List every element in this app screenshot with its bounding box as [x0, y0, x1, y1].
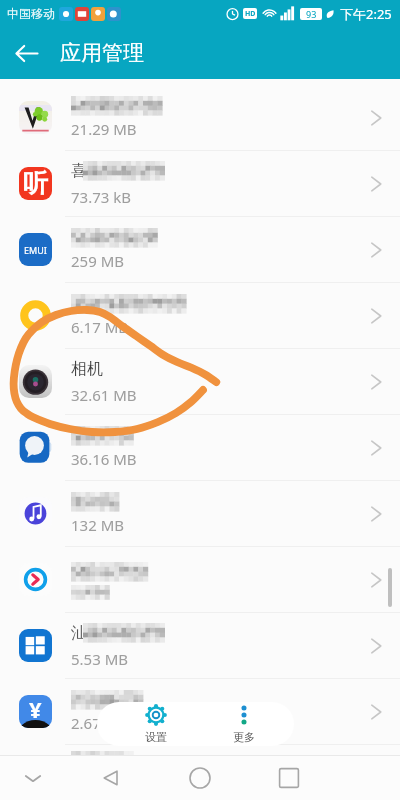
staticText: 中国移动 [7, 6, 55, 21]
button[interactable]: 6.17 MB [0, 283, 400, 349]
button[interactable]: 36.16 MB [0, 415, 400, 481]
button[interactable]: 21.29 MB [0, 85, 400, 151]
staticText: 73.73 kB [71, 187, 132, 207]
staticText: 相机 [71, 359, 103, 379]
button[interactable]: Home [179, 756, 221, 800]
staticText: HD [245, 9, 256, 19]
button[interactable]: Back [0, 27, 52, 79]
button[interactable]: 听 [0, 151, 400, 217]
staticText: 259 MB [71, 251, 124, 271]
staticText: 6.17 MB [71, 317, 129, 337]
staticText: 36.16 MB [71, 449, 137, 469]
staticText: 2.67 GB [71, 713, 126, 733]
staticText: 应用管理 [60, 40, 144, 66]
button[interactable]: ¥ [0, 679, 400, 745]
staticText: 21.29 MB [71, 119, 137, 139]
staticText: 5.53 MB [71, 649, 129, 669]
staticText: 听 [23, 168, 48, 199]
button[interactable] [0, 547, 400, 613]
staticText: 喜 [71, 161, 87, 181]
button[interactable]: 132 MB [0, 481, 400, 547]
button[interactable]: 更多 [214, 702, 274, 746]
staticText: ¥ [29, 695, 42, 724]
staticText: 93 [306, 8, 317, 20]
staticText: 下午2:25 [340, 5, 392, 23]
staticText: 132 MB [71, 515, 124, 535]
button[interactable]: 相机 [0, 349, 400, 415]
button[interactable]: Recents [268, 756, 310, 800]
staticText: EMUI [24, 244, 47, 256]
button[interactable]: Hide [12, 756, 54, 800]
button[interactable]: EMUI [0, 217, 400, 283]
staticText: 汕 [71, 623, 87, 643]
staticText: 32.61 MB [71, 385, 137, 405]
button[interactable]: Back [90, 756, 132, 800]
staticText: 更多 [233, 730, 255, 744]
button[interactable] [0, 745, 400, 800]
button[interactable]: 设置 [126, 702, 186, 746]
button[interactable]: 汕 [0, 613, 400, 679]
staticText: 设置 [145, 730, 167, 744]
